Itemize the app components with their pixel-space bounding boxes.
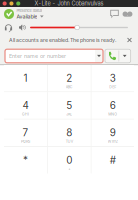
button[interactable]: Speaker volume <box>18 23 27 32</box>
staticText: 6 <box>110 99 116 111</box>
staticText: # <box>110 154 116 166</box>
button[interactable]: 9 <box>92 120 134 146</box>
staticText: ABC <box>66 85 73 89</box>
staticText: 0 <box>66 154 72 166</box>
button[interactable]: 6 <box>92 92 134 119</box>
button[interactable]: Headset device <box>4 23 13 32</box>
button[interactable]: * <box>4 147 47 173</box>
button[interactable]: Minimise window <box>7 1 13 6</box>
button[interactable]: Recent numbers <box>95 49 103 63</box>
staticText: 4 <box>22 99 28 111</box>
staticText: 8 <box>66 127 72 139</box>
staticText: DEF <box>109 85 116 89</box>
button[interactable]: Presence Status <box>0 8 44 20</box>
button[interactable]: 2 <box>48 65 91 91</box>
button[interactable]: Zoom window <box>13 1 20 6</box>
button[interactable]: 4 <box>4 92 47 119</box>
button[interactable]: 3 <box>92 65 134 91</box>
staticText: 1 <box>23 72 27 84</box>
button[interactable]: Close window <box>3 1 7 6</box>
staticText: MNO <box>108 112 117 116</box>
staticText: + <box>68 167 70 171</box>
staticText: GHI <box>22 112 29 116</box>
staticText: 9 <box>110 127 116 139</box>
staticText: JKL <box>66 112 72 116</box>
button[interactable]: Call options <box>119 49 130 63</box>
staticText: PQRS <box>21 139 30 144</box>
staticText: * <box>23 154 28 166</box>
staticText: 3 <box>110 72 116 84</box>
button[interactable]: 8 <box>48 120 91 146</box>
staticText: TUV <box>66 139 73 144</box>
button[interactable]: 7 <box>4 120 47 146</box>
button[interactable]: Voicemail <box>121 7 134 21</box>
staticText: Enter name or number <box>9 53 66 59</box>
staticText: Presence Status <box>16 8 42 13</box>
staticText: 2 <box>66 72 72 84</box>
staticText: All accounts are enabled. The phone is r… <box>9 37 116 43</box>
button[interactable]: 5 <box>48 92 91 119</box>
staticText: 7 <box>22 127 28 139</box>
staticText: WXYZ <box>108 139 118 144</box>
staticText: 5 <box>66 99 72 111</box>
button[interactable]: Messages <box>108 7 121 21</box>
button[interactable]: 1 <box>4 65 47 91</box>
staticText: X-Lite - John Cobanvulvas <box>34 0 103 7</box>
staticText: Available <box>16 13 37 20</box>
button[interactable]: # <box>92 147 134 173</box>
button[interactable]: 0 <box>48 147 91 173</box>
button[interactable]: Call <box>105 49 118 63</box>
button[interactable]: Dismiss message <box>125 35 134 45</box>
